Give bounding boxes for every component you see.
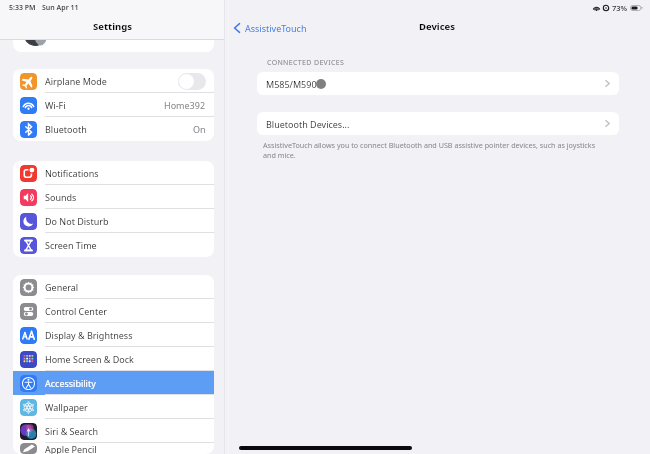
staticText: Wallpaper <box>45 401 88 413</box>
button[interactable]: Airplane Mode <box>13 69 214 93</box>
staticText: Home Screen & Dock <box>45 353 134 365</box>
staticText: Settings <box>93 20 132 33</box>
staticText: Sounds <box>45 191 77 203</box>
staticText: Display & Brightness <box>45 329 133 341</box>
staticText: Wi-Fi <box>45 99 66 111</box>
staticText: Apple Pencil <box>45 443 97 454</box>
staticText: Airplane Mode <box>45 75 107 87</box>
other: Open <box>605 80 610 87</box>
button[interactable]: Wallpaper <box>13 395 214 419</box>
staticText: Control Center <box>45 305 107 317</box>
button[interactable]: AssistiveTouch <box>234 22 307 34</box>
staticText: Home392 <box>164 99 206 111</box>
staticText: Devices <box>419 20 456 33</box>
staticText: Notifications <box>45 167 99 179</box>
staticText: AssistiveTouch <box>245 22 307 34</box>
staticText: Sun Apr 11 <box>42 3 79 13</box>
button[interactable]: General <box>13 275 214 299</box>
staticText: M585/M590 <box>266 78 317 90</box>
staticText: Siri & Search <box>45 425 99 437</box>
button[interactable]: Sounds <box>13 185 214 209</box>
button[interactable]: Accessibility <box>13 371 214 395</box>
button[interactable]: Display & Brightness <box>13 323 214 347</box>
staticText: Accessibility <box>45 377 96 389</box>
staticText: AssistiveTouch allows you to connect Blu… <box>263 140 601 160</box>
button[interactable]: Siri & Search <box>13 419 214 443</box>
staticText: 73% <box>612 3 628 13</box>
staticText: Screen Time <box>45 239 97 251</box>
other: Open <box>605 120 610 127</box>
button[interactable]: Wi-Fi <box>13 93 214 117</box>
button[interactable]: Screen Time <box>13 233 214 257</box>
button[interactable]: Apple Pencil <box>13 443 214 454</box>
staticText: Bluetooth Devices... <box>266 118 350 130</box>
staticText: CONNECTED DEVICES <box>267 58 345 68</box>
staticText: 5:33 PM <box>9 3 36 13</box>
staticText: Bluetooth <box>45 123 87 135</box>
button[interactable]: Do Not Disturb <box>13 209 214 233</box>
button[interactable]: Control Center <box>13 299 214 323</box>
button[interactable]: Home Screen & Dock <box>13 347 214 371</box>
button[interactable]: M585/M590 <box>257 72 619 95</box>
staticText: Do Not Disturb <box>45 215 109 227</box>
button[interactable]: Bluetooth <box>13 117 214 141</box>
button[interactable]: Bluetooth Devices... <box>257 112 619 135</box>
staticText: On <box>193 123 206 135</box>
staticText: General <box>45 281 79 293</box>
button[interactable]: Notifications <box>13 161 214 185</box>
